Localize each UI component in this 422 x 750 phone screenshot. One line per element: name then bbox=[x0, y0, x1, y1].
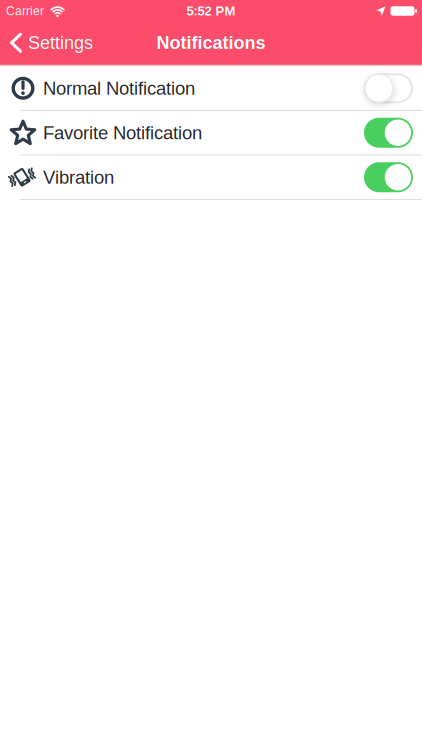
staticText: Normal Notification bbox=[43, 78, 195, 99]
staticText: Notifications bbox=[156, 33, 265, 53]
staticText: Favorite Notification bbox=[43, 122, 202, 143]
staticText: Vibration bbox=[43, 167, 114, 188]
button[interactable]: Normal Notification bbox=[364, 73, 413, 103]
button[interactable]: Favorite Notification bbox=[364, 118, 413, 148]
button[interactable]: Back bbox=[0, 33, 93, 53]
staticText: Carrier bbox=[6, 4, 44, 18]
staticText: 5:52 PM bbox=[186, 4, 235, 18]
button[interactable]: Vibration bbox=[364, 162, 413, 192]
staticText: Settings bbox=[28, 33, 93, 53]
